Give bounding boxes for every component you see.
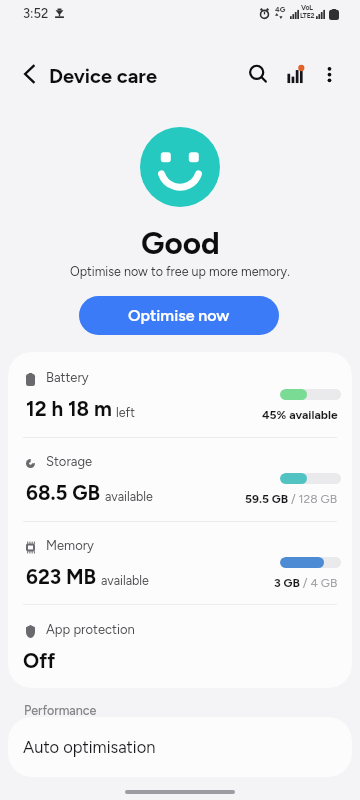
staticText: 59.5 GB / 128 GB: [245, 492, 338, 506]
staticText: Storage: [46, 454, 93, 470]
staticText: available: [105, 489, 153, 504]
staticText: Memory: [46, 538, 94, 554]
button[interactable]: App protection: [8, 604, 352, 688]
staticText: 623 MB: [26, 565, 97, 590]
button[interactable]: Search: [241, 56, 273, 88]
button[interactable]: Back: [12, 56, 48, 92]
staticText: available: [101, 573, 149, 588]
staticText: 68.5 GB: [26, 481, 101, 506]
staticText: left: [116, 405, 135, 420]
staticText: Battery: [46, 370, 89, 386]
staticText: VoL: [301, 3, 313, 11]
button[interactable]: Memory: [8, 520, 352, 604]
staticText: App protection: [46, 622, 135, 638]
staticText: Optimise now: [128, 306, 230, 325]
staticText: 45% available: [262, 408, 338, 422]
staticText: LTE2: [300, 11, 315, 19]
staticText: Off: [23, 649, 56, 674]
staticText: Good: [141, 224, 220, 262]
staticText: Auto optimisation: [23, 737, 156, 757]
button[interactable]: Optimise now: [79, 296, 279, 335]
staticText: 12 h 18 m: [26, 397, 112, 422]
button[interactable]: Auto optimisation: [8, 717, 352, 777]
staticText: Performance: [24, 703, 97, 718]
button[interactable]: Battery: [8, 352, 352, 436]
staticText: Device care: [49, 64, 157, 88]
staticText: 3 GB / 4 GB: [274, 576, 338, 590]
staticText: 3:52: [23, 6, 49, 22]
button[interactable]: Diagnostics: [279, 56, 311, 88]
button[interactable]: Storage: [8, 436, 352, 520]
staticText: Optimise now to free up more memory.: [70, 264, 290, 279]
staticText: 4G: [275, 5, 286, 14]
button[interactable]: More options: [313, 56, 345, 88]
